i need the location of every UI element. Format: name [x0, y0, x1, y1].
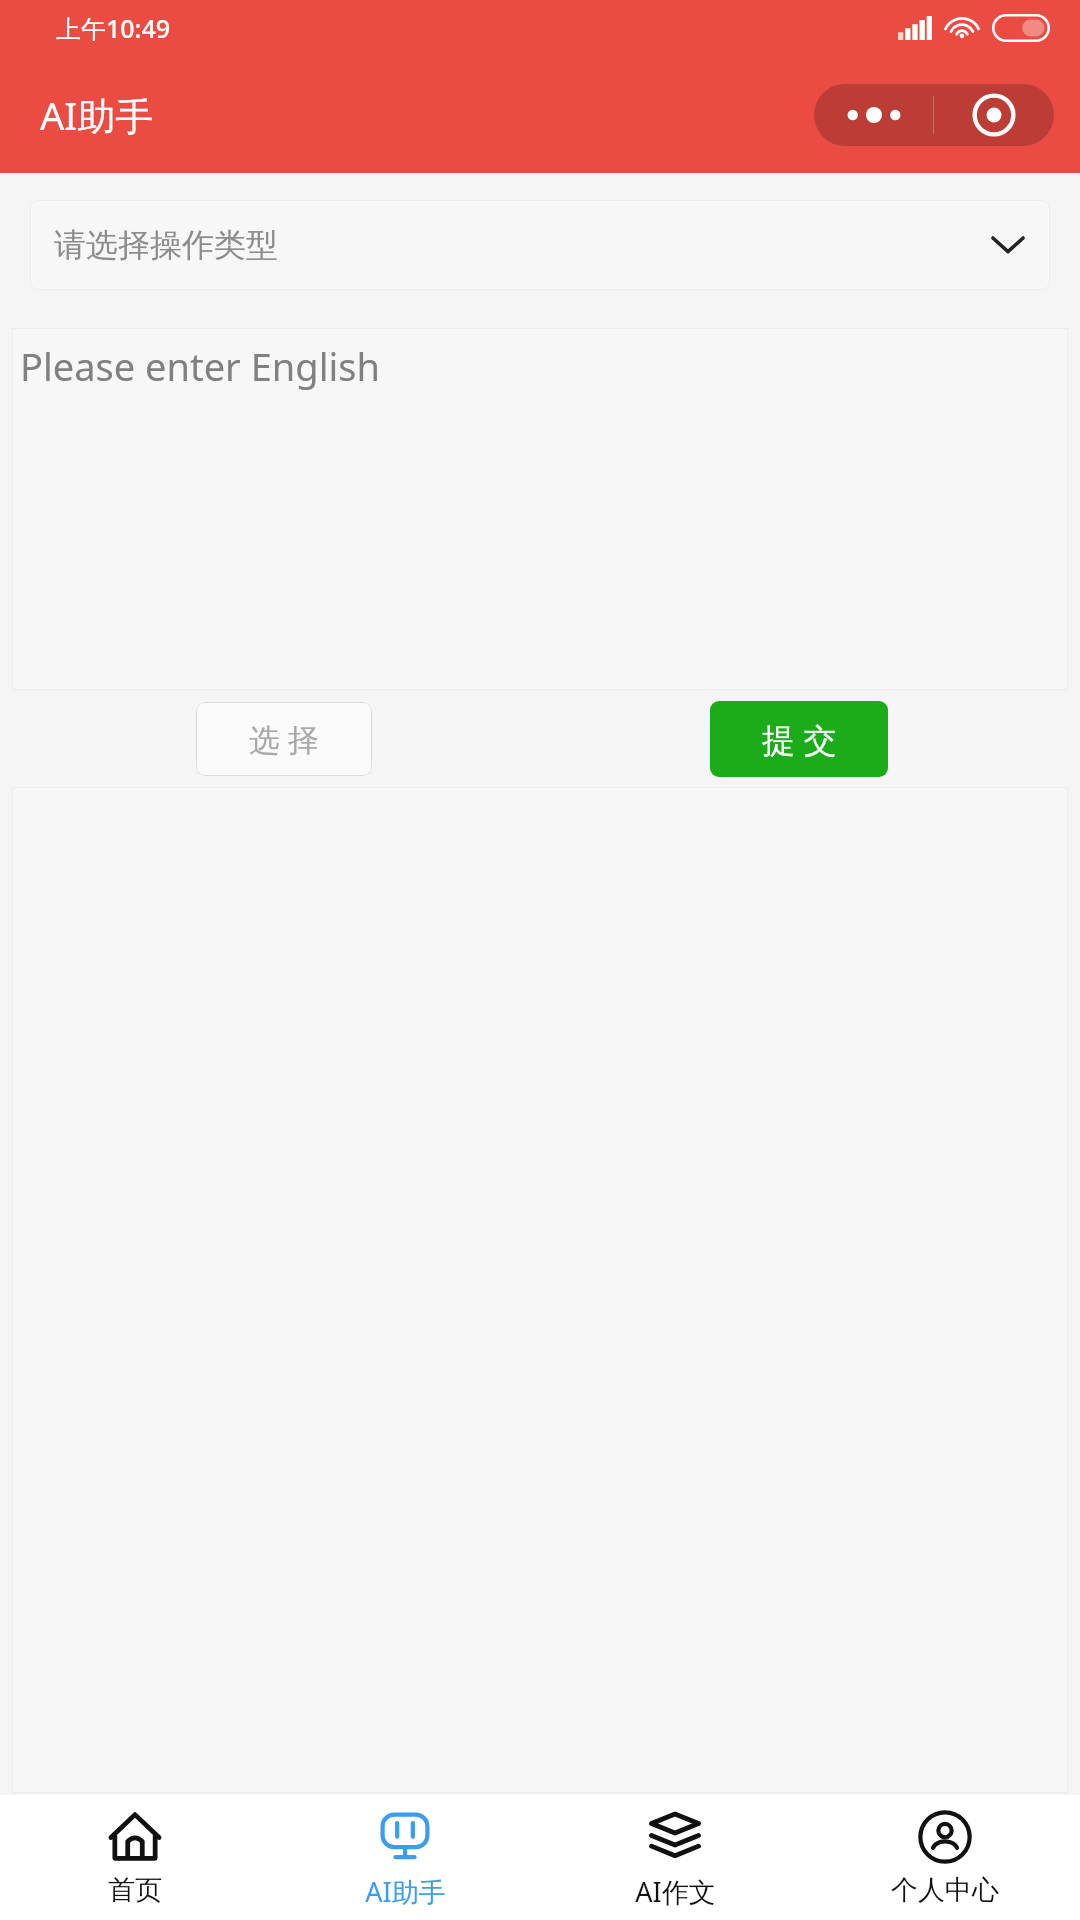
staticText: AI助手: [40, 89, 154, 141]
button[interactable]: AI助手: [270, 1795, 540, 1920]
staticText: 提 交: [762, 717, 837, 762]
button[interactable]: AI作文: [540, 1795, 810, 1920]
staticText: 选 择: [249, 718, 320, 760]
staticText: 个人中心: [891, 1873, 999, 1907]
staticText: 首页: [108, 1873, 162, 1907]
button[interactable]: 请选择操作类型: [30, 200, 1050, 290]
staticText: 上午10:49: [56, 11, 171, 45]
button[interactable]: Please enter English: [12, 328, 1068, 690]
staticText: AI助手: [365, 1873, 446, 1910]
staticText: 请选择操作类型: [54, 225, 278, 265]
button[interactable]: 个人中心: [810, 1795, 1080, 1920]
staticText: Please enter English: [20, 340, 380, 392]
button[interactable]: 选 择: [196, 702, 372, 776]
button[interactable]: 首页: [0, 1795, 270, 1920]
button[interactable]: 提 交: [710, 701, 888, 777]
staticText: AI作文: [635, 1873, 716, 1910]
button[interactable]: More options: [814, 84, 1054, 146]
